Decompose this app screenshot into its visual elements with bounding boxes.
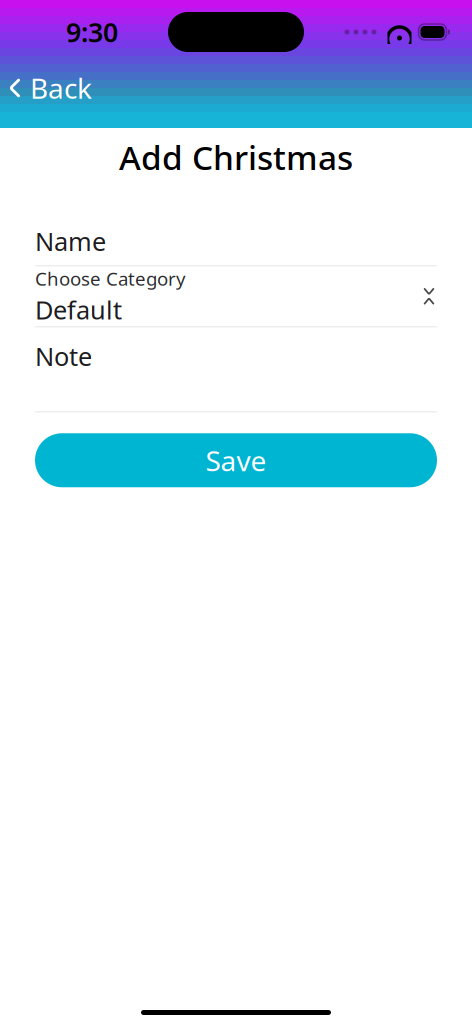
button[interactable]: Choose Category [0, 266, 472, 326]
button[interactable]: Name [0, 217, 472, 265]
staticText: Choose Category [35, 266, 186, 291]
staticText: 9:30 [66, 14, 118, 50]
button[interactable]: Save [35, 433, 437, 487]
staticText: Back [30, 69, 92, 107]
button[interactable]: Note [0, 327, 472, 411]
staticText: Add Christmas [119, 135, 353, 179]
button[interactable]: Back [0, 61, 104, 115]
staticText: Save [205, 442, 266, 479]
staticText: Name [35, 224, 106, 258]
staticText: Default [35, 293, 122, 326]
staticText: Note [35, 339, 92, 373]
